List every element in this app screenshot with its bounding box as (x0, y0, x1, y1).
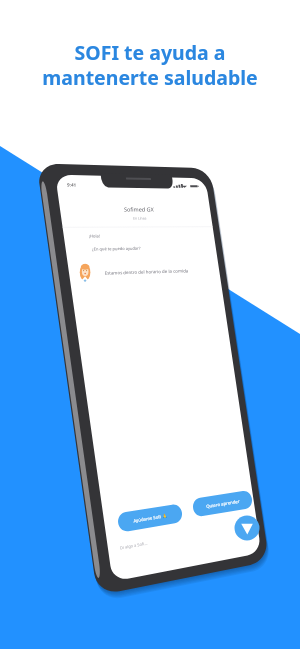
staticText: SOFI te ayuda a mantenerte saludable (42, 39, 258, 90)
